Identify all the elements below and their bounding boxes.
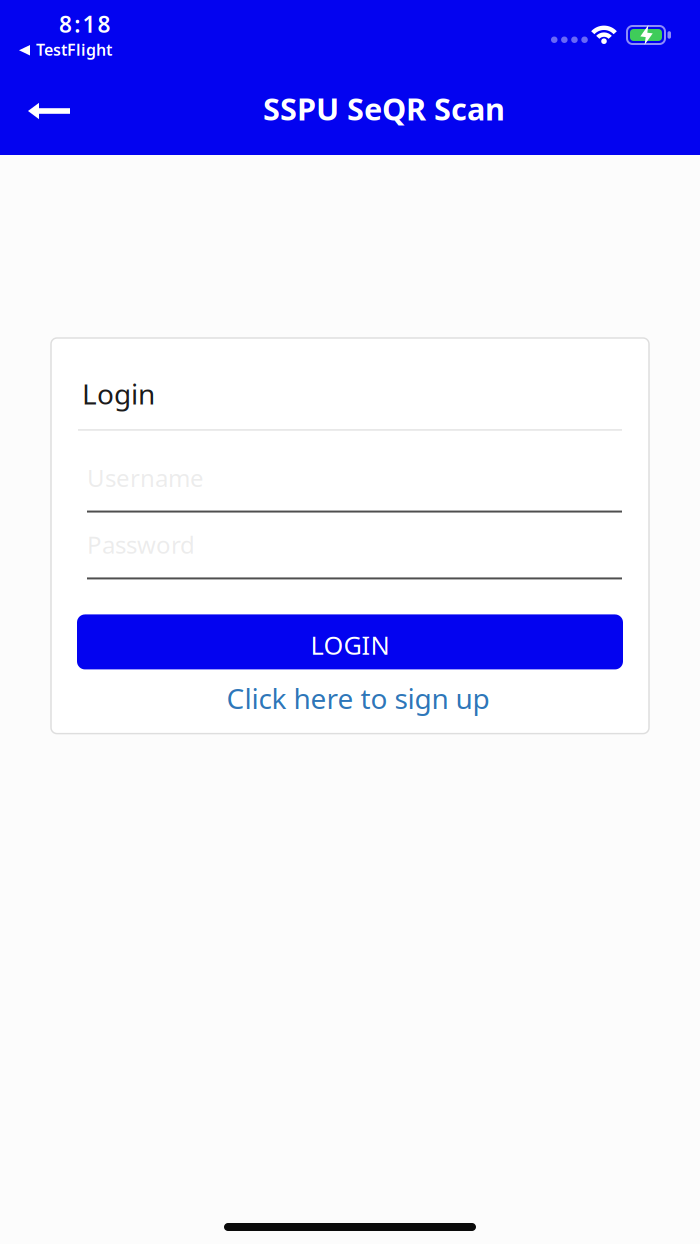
button[interactable]: Password	[51, 529, 649, 579]
button[interactable]: Click here to sign up	[51, 679, 649, 717]
staticText: LOGIN	[310, 628, 389, 662]
staticText: TestFlight	[36, 39, 112, 60]
staticText: Click here to sign up	[226, 679, 489, 717]
staticText: :	[74, 9, 80, 39]
button[interactable]: Back	[0, 88, 70, 133]
staticText: 1	[82, 9, 95, 39]
staticText: SSPU SeQR Scan	[263, 88, 505, 129]
staticText: 8	[59, 9, 72, 39]
staticText: Login	[82, 375, 155, 412]
staticText: 8	[98, 9, 111, 39]
button[interactable]: LOGIN	[51, 614, 649, 669]
button[interactable]: Username	[51, 462, 649, 513]
staticText: Password	[87, 529, 195, 560]
staticText: Username	[87, 462, 204, 494]
